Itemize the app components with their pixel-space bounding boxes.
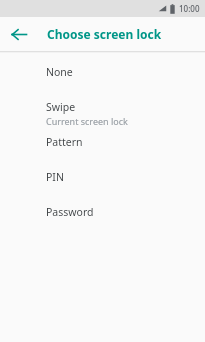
button[interactable]: Swipe — [0, 97, 205, 132]
staticText: Swipe — [46, 100, 76, 114]
button[interactable]: Password — [0, 202, 205, 237]
staticText: None — [46, 65, 73, 79]
button[interactable]: None — [0, 62, 205, 97]
staticText: 10:00 — [179, 3, 200, 14]
button[interactable]: PIN — [0, 167, 205, 202]
button[interactable]: Navigate up — [5, 21, 32, 48]
staticText: Password — [46, 205, 94, 219]
staticText: Current screen lock — [46, 115, 128, 127]
staticText: PIN — [46, 170, 64, 184]
button[interactable]: Pattern — [0, 132, 205, 167]
staticText: Choose screen lock — [47, 26, 162, 42]
staticText: Pattern — [46, 135, 83, 149]
